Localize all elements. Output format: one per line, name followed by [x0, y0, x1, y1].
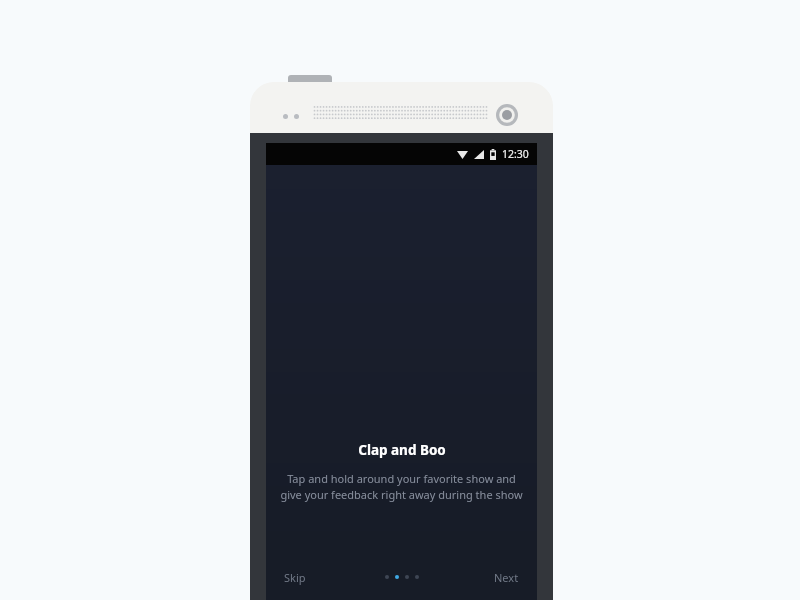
staticText: Skip [284, 570, 306, 585]
staticText: 12:30 [502, 147, 529, 161]
staticText: Next [494, 570, 519, 585]
button[interactable]: Next [476, 560, 537, 595]
staticText: Tap and hold around your favorite show a… [280, 471, 523, 502]
staticText: Clap and Boo [358, 441, 446, 459]
button[interactable]: Skip [266, 560, 324, 595]
